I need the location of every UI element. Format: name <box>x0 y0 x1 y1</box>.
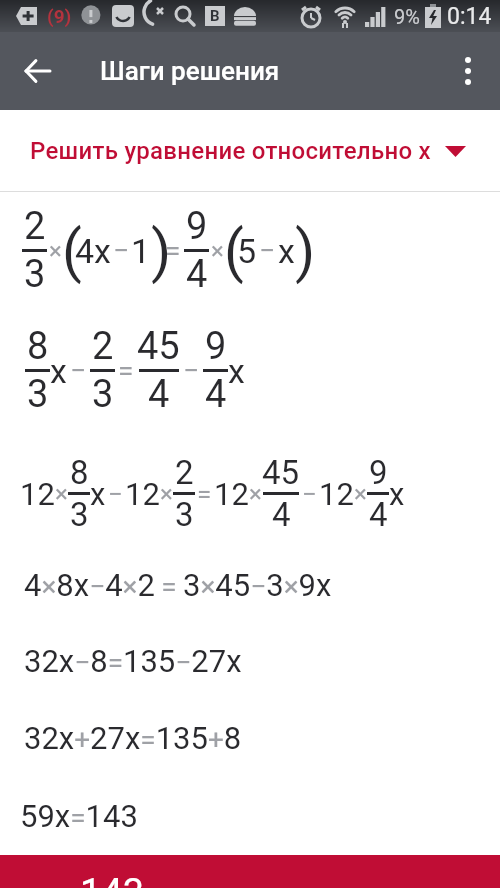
staticText: (9) <box>47 5 72 27</box>
staticText: 9% <box>394 5 420 28</box>
staticText: 3 <box>24 252 46 297</box>
staticText: 8 <box>70 453 89 492</box>
staticText: = <box>165 234 181 267</box>
staticText: 9 <box>369 453 388 492</box>
button[interactable] <box>14 47 62 95</box>
staticText: 8 <box>27 324 49 369</box>
staticText: − <box>113 234 130 267</box>
staticText: 3 <box>92 372 114 417</box>
staticText: = <box>197 479 212 509</box>
staticText: 2 <box>92 324 114 369</box>
button[interactable]: 143 <box>0 855 500 888</box>
staticText: 9 <box>205 324 227 369</box>
staticText: × <box>354 480 367 508</box>
staticText: 5 <box>237 231 257 271</box>
staticText: 32x−8=135−27x <box>24 643 242 679</box>
staticText: 4 <box>148 372 170 417</box>
staticText: 3 <box>70 495 89 534</box>
staticText: 4×8x−4×2 = 3×45−3×9x <box>24 567 332 603</box>
staticText: 3 <box>27 372 49 417</box>
staticText: x <box>389 476 405 512</box>
staticText: × <box>160 480 173 508</box>
staticText: − <box>108 479 123 509</box>
staticText: ( <box>62 217 74 285</box>
staticText: 45 <box>137 324 180 369</box>
staticText: 4 <box>205 372 227 417</box>
staticText: 12 <box>20 476 55 512</box>
staticText: − <box>302 479 317 509</box>
staticText: x <box>228 351 245 391</box>
staticText: 143 <box>80 871 145 888</box>
staticText: − <box>183 354 200 387</box>
staticText: 3 <box>175 495 194 534</box>
staticText: 12 <box>125 476 160 512</box>
staticText: 4 <box>369 495 388 534</box>
staticText: Решить уравнение относительно x <box>30 137 431 165</box>
staticText: 4 <box>186 252 208 297</box>
staticText: x <box>90 476 106 512</box>
staticText: 4x <box>75 231 111 271</box>
staticText: 12 <box>214 476 249 512</box>
staticText: = <box>118 354 134 387</box>
staticText: − <box>259 234 276 267</box>
staticText: 45 <box>262 453 300 492</box>
staticText: × <box>249 480 262 508</box>
staticText: ( <box>224 217 236 285</box>
staticText: B <box>210 7 220 25</box>
staticText: Шаги решения <box>100 56 280 86</box>
staticText: 9 <box>186 204 208 249</box>
staticText: 0:14 <box>447 3 492 30</box>
staticText: x <box>278 231 295 271</box>
staticText: × <box>49 237 62 265</box>
staticText: 12 <box>319 476 354 512</box>
button[interactable]: Решить уравнение относительно x <box>30 137 466 165</box>
staticText: 2 <box>24 204 46 249</box>
staticText: x <box>50 351 67 391</box>
staticText: 4 <box>272 495 291 534</box>
staticText: ) <box>151 217 163 285</box>
staticText: 32x+27x=135+8 <box>24 720 242 756</box>
staticText: ) <box>295 217 307 285</box>
staticText: × <box>55 480 68 508</box>
button[interactable] <box>448 51 488 91</box>
staticText: 1 <box>131 231 151 271</box>
staticText: − <box>70 354 87 387</box>
staticText: 59x=143 <box>20 798 138 834</box>
staticText: × <box>211 237 224 265</box>
staticText: 2 <box>175 453 194 492</box>
